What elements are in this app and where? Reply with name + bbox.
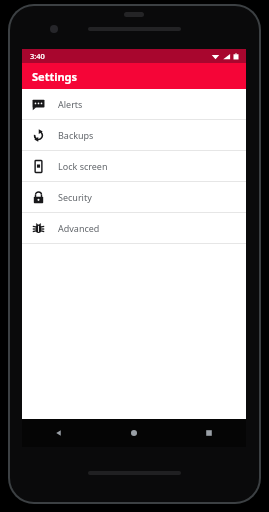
staticText: Lock screen xyxy=(58,160,108,172)
button[interactable]: Backups xyxy=(22,120,246,150)
staticText: Settings xyxy=(32,69,78,84)
staticText: Backups xyxy=(58,129,94,141)
button[interactable]: Home xyxy=(96,419,171,447)
staticText: 3:40 xyxy=(30,51,45,61)
button[interactable]: Back xyxy=(22,419,96,447)
button[interactable]: Recent apps xyxy=(171,419,246,447)
staticText: Security xyxy=(58,191,92,203)
button[interactable]: Lock screen xyxy=(22,151,246,181)
button[interactable]: Alerts xyxy=(22,89,246,119)
button[interactable]: Advanced xyxy=(22,213,246,243)
button[interactable]: Security xyxy=(22,182,246,212)
staticText: Advanced xyxy=(58,222,100,234)
staticText: Alerts xyxy=(58,98,83,110)
